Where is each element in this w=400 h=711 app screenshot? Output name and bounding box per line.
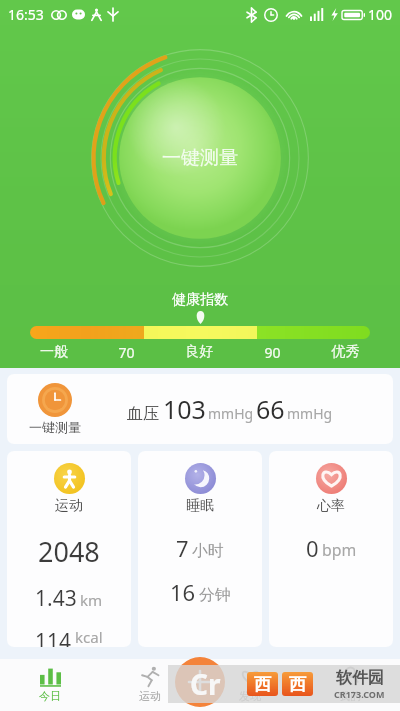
staticText: 0 <box>306 533 319 563</box>
staticText: 血压 <box>127 404 159 424</box>
staticText: 103 <box>163 392 206 426</box>
staticText: 发现 <box>239 689 261 703</box>
staticText: 今日 <box>39 689 61 703</box>
staticText: 小时 <box>192 541 224 561</box>
staticText: 7 <box>176 533 189 563</box>
staticText: CR173.COM <box>334 688 385 700</box>
staticText: 66 <box>256 392 285 426</box>
staticText: 优秀 <box>309 343 382 361</box>
staticText: 西 <box>254 674 271 695</box>
staticText: Cr <box>190 665 221 703</box>
staticText: 心率 <box>317 497 345 515</box>
staticText: 114 <box>35 627 72 647</box>
staticText: 一般 <box>18 343 90 361</box>
button[interactable]: 运动 <box>100 659 200 711</box>
staticText: 16:53 <box>8 5 44 24</box>
button[interactable]: 睡眠 <box>138 451 262 647</box>
staticText: 90 <box>236 343 309 362</box>
staticText: 良好 <box>163 343 236 361</box>
staticText: 70 <box>90 343 163 362</box>
staticText: 1.43 <box>35 584 77 613</box>
staticText: 运动 <box>139 689 161 703</box>
button[interactable]: 发现 <box>200 659 300 711</box>
staticText: 我的 <box>339 689 361 703</box>
staticText: kcal <box>75 627 103 645</box>
staticText: 一键测量 <box>162 146 238 170</box>
staticText: 2048 <box>38 533 100 570</box>
button[interactable]: 一键测量 <box>90 48 310 268</box>
staticText: 睡眠 <box>186 497 214 515</box>
staticText: mmHg <box>287 404 333 423</box>
staticText: 健康指数 <box>0 291 400 309</box>
staticText: 西 <box>289 674 306 695</box>
staticText: 分钟 <box>199 585 231 605</box>
button[interactable]: 添加 <box>175 657 225 707</box>
staticText: mmHg <box>208 404 254 423</box>
button[interactable]: 一键测量 <box>7 374 393 444</box>
staticText: 100 <box>368 5 393 24</box>
staticText: bpm <box>322 539 357 561</box>
button[interactable]: 运动 <box>7 451 131 647</box>
staticText: 16 <box>170 577 196 607</box>
button[interactable]: 心率 <box>269 451 393 647</box>
staticText: 运动 <box>55 497 83 515</box>
staticText: km <box>80 590 103 611</box>
button[interactable]: 今日 <box>0 659 100 711</box>
button[interactable]: 我的 <box>300 659 400 711</box>
staticText: 一键测量 <box>29 419 81 435</box>
staticText: 软件园 <box>336 668 384 688</box>
